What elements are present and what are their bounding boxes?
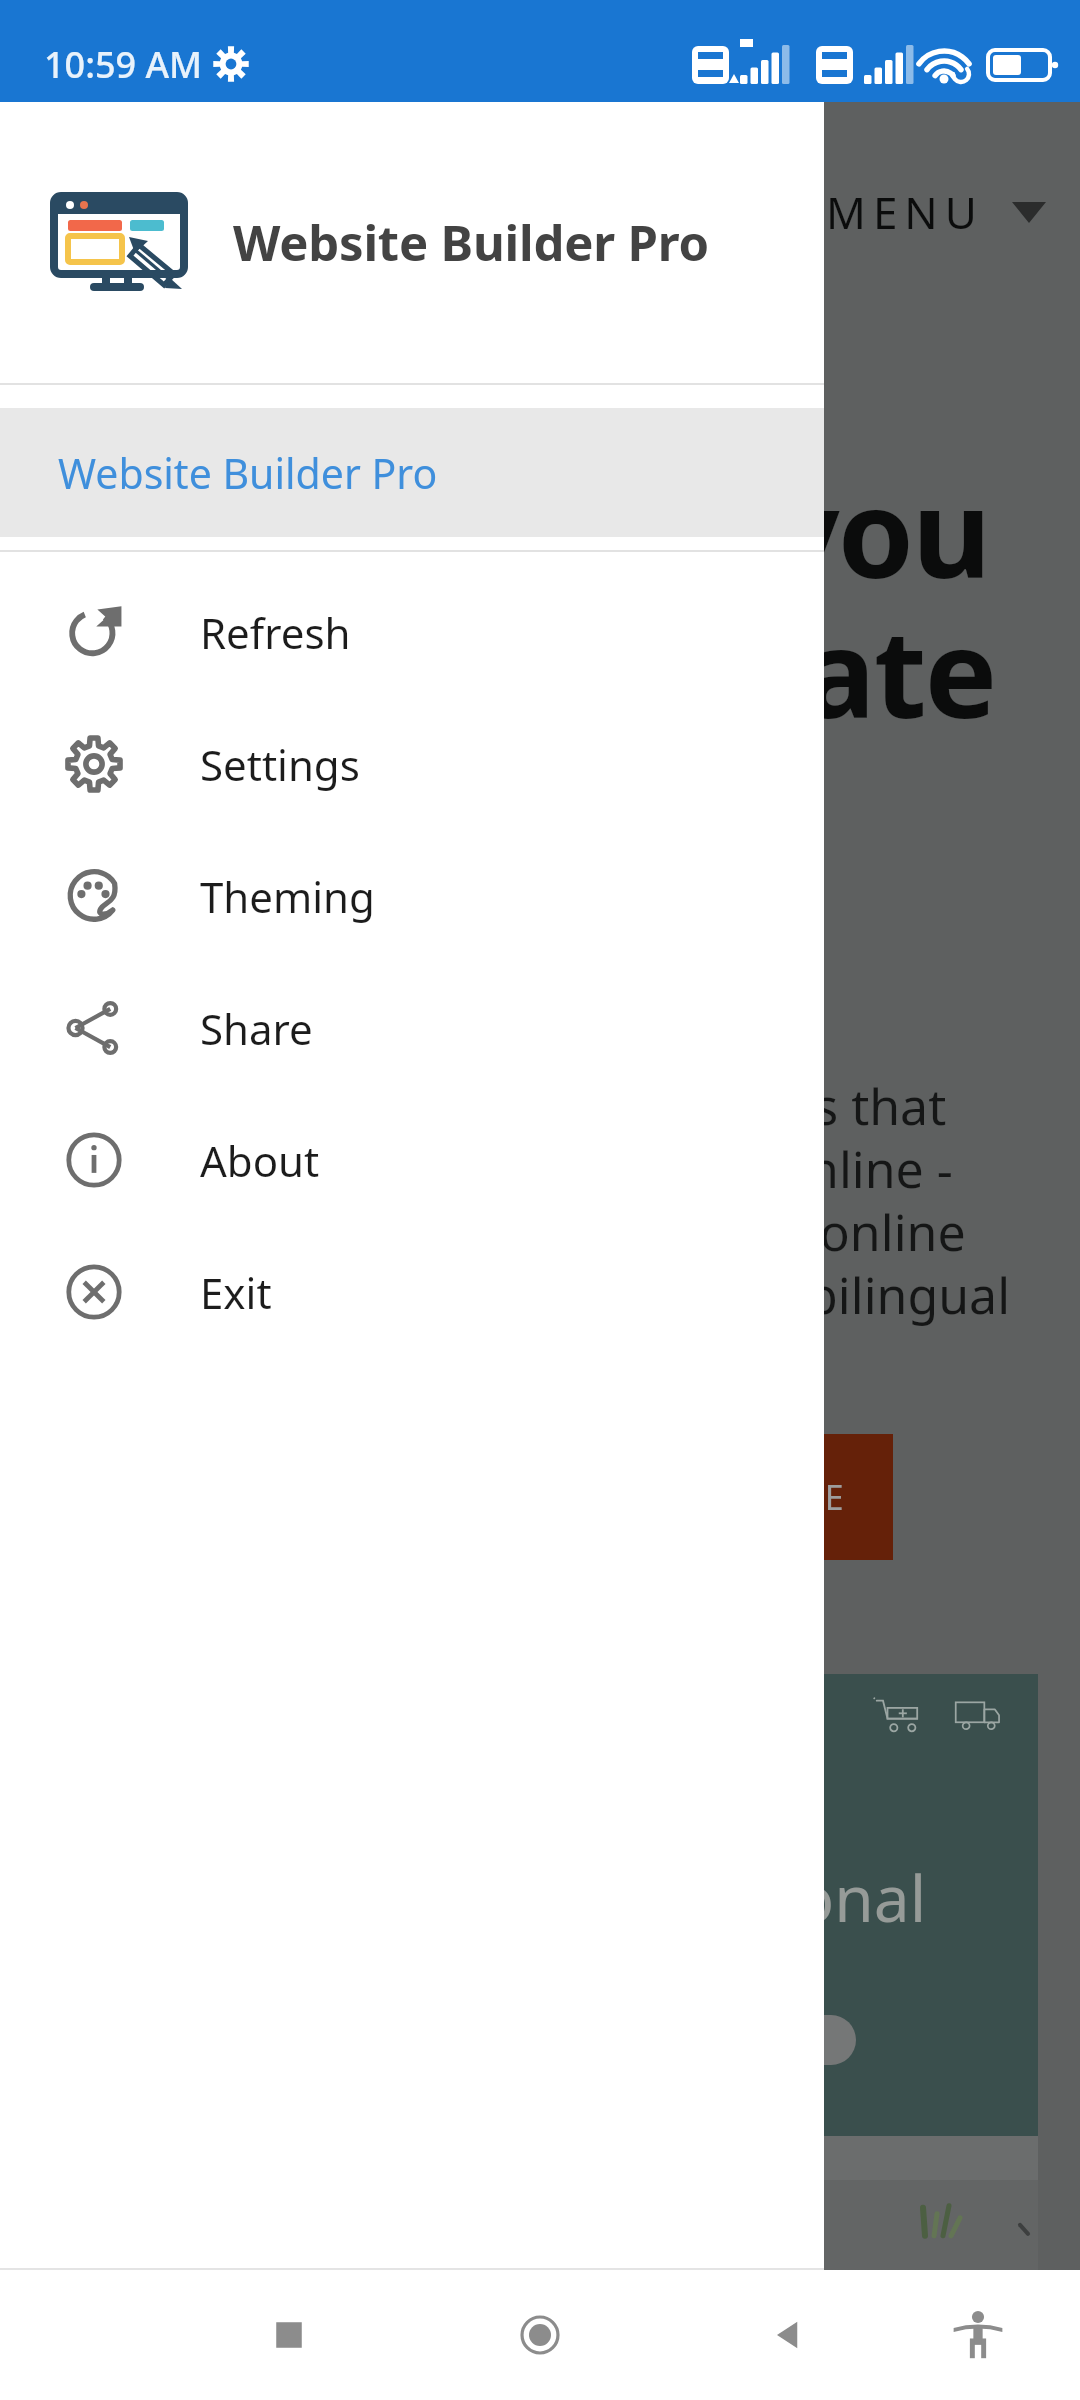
staticText: bring your business online - <box>300 1135 953 1203</box>
button[interactable]: Website Builder Pro <box>0 408 824 537</box>
staticText: Theming <box>200 868 375 925</box>
staticText: We create websites that <box>387 1072 947 1140</box>
button[interactable]: Home <box>488 2283 592 2387</box>
staticText: GET A QUOTE <box>607 1474 846 1520</box>
staticText: About <box>200 1132 320 1189</box>
staticText: Professional <box>557 1854 927 1941</box>
staticText: 10:59 AM <box>44 40 203 89</box>
staticText: Exit <box>200 1264 272 1321</box>
staticText: and more. Fully bilingual <box>432 1261 1011 1329</box>
button[interactable]: Website Builder Pro <box>0 102 824 383</box>
button[interactable]: Refresh <box>0 566 824 698</box>
button[interactable]: Recents <box>237 2283 341 2387</box>
button[interactable]: GET A QUOTE <box>560 1434 893 1560</box>
button[interactable]: Theming <box>0 830 824 962</box>
button[interactable]: Back <box>736 2283 840 2387</box>
staticText: Website Builder Pro <box>233 209 709 276</box>
staticText: Website Builder Pro <box>58 445 438 501</box>
button[interactable]: About <box>0 1094 824 1226</box>
staticText: a site you appreciate <box>0 588 996 754</box>
button[interactable]: Accessibility <box>926 2283 1030 2387</box>
staticText: to grow your sales online <box>376 1198 966 1266</box>
button[interactable]: Exit <box>0 1226 824 1358</box>
staticText: Share <box>200 1000 313 1057</box>
button[interactable] <box>726 2015 856 2065</box>
button[interactable]: Share <box>0 962 824 1094</box>
staticText: Refresh <box>200 604 351 661</box>
button[interactable]: Settings <box>0 698 824 830</box>
button[interactable]: MENU <box>826 182 1046 242</box>
staticText: MENU <box>826 182 984 242</box>
staticText: Settings <box>200 736 360 793</box>
staticText: Let us build you <box>60 448 990 614</box>
